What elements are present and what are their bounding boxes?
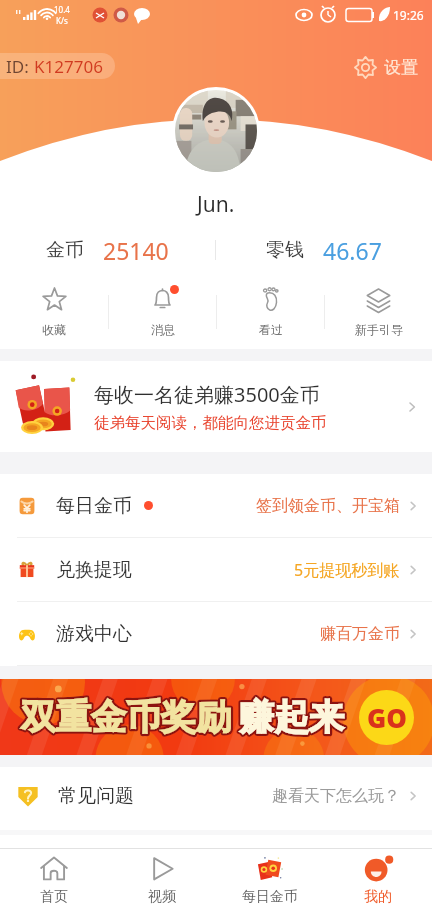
button[interactable]: 收藏	[0, 282, 108, 342]
button[interactable]: 我的	[324, 849, 432, 912]
staticText: 常见问题	[58, 784, 134, 808]
staticText: 5元提现秒到账	[294, 559, 400, 581]
staticText: 新手引导	[355, 322, 403, 337]
button[interactable]: 常见问题	[0, 767, 432, 825]
button[interactable]: 金币	[0, 230, 215, 270]
staticText: 兑换提现	[56, 558, 132, 582]
staticText: 我的	[364, 888, 392, 906]
button[interactable]: 零钱	[216, 230, 432, 270]
staticText: 10.4	[54, 4, 70, 15]
staticText: 设置	[384, 57, 418, 78]
staticText: 每日金币	[56, 494, 132, 518]
button[interactable]: 每日金币	[216, 849, 324, 912]
staticText: Jun.	[197, 190, 235, 219]
staticText: 徒弟每天阅读，都能向您进贡金币	[94, 413, 327, 433]
staticText: K127706	[34, 55, 103, 78]
staticText: 46.67	[323, 235, 382, 266]
staticText: 零钱	[266, 238, 304, 262]
button[interactable]: Profile photo	[172, 87, 260, 175]
staticText: 赚起来	[239, 695, 344, 739]
staticText: 视频	[148, 888, 176, 906]
button[interactable]: 游戏中心	[0, 602, 432, 665]
staticText: 19:26	[393, 7, 424, 23]
staticText: 消息	[151, 322, 175, 337]
staticText: 金币	[46, 238, 84, 262]
staticText: 25140	[103, 235, 169, 266]
staticText: 赚起来	[239, 695, 344, 739]
button[interactable]: 设置	[350, 53, 422, 82]
button[interactable]: 双重金币奖励	[0, 679, 432, 755]
staticText: 双重金币奖励	[21, 695, 231, 739]
staticText: 每日金币	[242, 888, 298, 906]
staticText: 赚百万金币	[320, 624, 400, 644]
staticText: K/s	[56, 15, 68, 26]
staticText: 双重金币奖励	[21, 695, 231, 739]
staticText: 签到领金币、开宝箱	[256, 496, 400, 516]
button[interactable]: ID:	[0, 53, 115, 79]
button[interactable]: 每收一名徒弟赚3500金币	[0, 361, 432, 452]
button[interactable]: 兑换提现	[0, 538, 432, 601]
staticText: 游戏中心	[56, 622, 132, 646]
button[interactable]: 消息	[109, 282, 216, 342]
staticText: 收藏	[42, 322, 66, 337]
staticText: 看过	[259, 322, 283, 337]
button[interactable]: 视频	[108, 849, 216, 912]
button[interactable]: 首页	[0, 849, 108, 912]
staticText: 趣看天下怎么玩？	[272, 786, 400, 806]
staticText: GO	[367, 700, 407, 735]
button[interactable]: 看过	[217, 282, 324, 342]
staticText: 每收一名徒弟赚3500金币	[94, 381, 320, 408]
button[interactable]: 每日金币	[0, 474, 432, 537]
button[interactable]: 新手引导	[325, 282, 432, 342]
staticText: ID:	[6, 55, 34, 78]
staticText: 首页	[40, 888, 68, 906]
